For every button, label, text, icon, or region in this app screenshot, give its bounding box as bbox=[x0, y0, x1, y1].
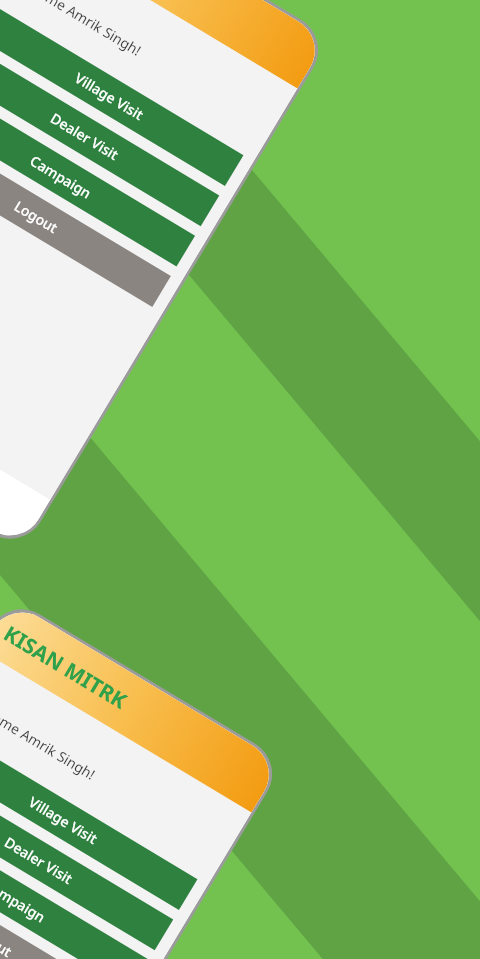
staticText: Welcome Amrik Singh! bbox=[8, 0, 145, 60]
staticText: Village Visit bbox=[71, 68, 147, 124]
staticText: Dealer Visit bbox=[1, 832, 76, 888]
staticText: Logout bbox=[0, 920, 16, 959]
button[interactable]: Campaign bbox=[0, 809, 149, 959]
button[interactable]: Dealer Visit bbox=[0, 769, 173, 950]
button[interactable]: Village Visit bbox=[0, 729, 197, 910]
button[interactable]: KISAN MITRK bbox=[0, 600, 281, 812]
staticText: Welcome Amrik Singh! bbox=[0, 691, 99, 784]
other: Phone mockup, app home screen bbox=[0, 596, 285, 959]
button[interactable]: KISAN MITRK bbox=[27, 0, 327, 88]
staticText: Campaign bbox=[26, 151, 95, 203]
staticText: Dealer Visit bbox=[47, 108, 122, 164]
staticText: Logout bbox=[11, 196, 62, 237]
button[interactable]: Campaign bbox=[0, 85, 195, 267]
staticText: Village Visit bbox=[25, 792, 101, 848]
other: Phone mockup, app home screen bbox=[0, 0, 331, 552]
button[interactable]: Logout bbox=[0, 850, 125, 959]
button[interactable]: Logout bbox=[0, 126, 171, 307]
staticText: KISAN MITRK bbox=[0, 619, 132, 715]
button[interactable]: Village Visit bbox=[0, 5, 243, 186]
button[interactable]: Dealer Visit bbox=[0, 45, 219, 226]
staticText: Campaign bbox=[0, 875, 49, 927]
